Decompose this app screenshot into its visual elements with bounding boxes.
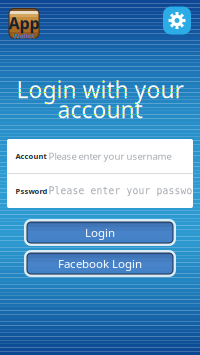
button[interactable]: App Wallet bbox=[8, 7, 40, 39]
staticText: Wallet bbox=[13, 31, 35, 41]
staticText: Login bbox=[85, 225, 115, 240]
staticText: App bbox=[8, 12, 39, 34]
staticText: Account bbox=[15, 151, 46, 161]
staticText: Facebook Login bbox=[58, 256, 142, 271]
staticText: Login with your bbox=[16, 74, 183, 104]
staticText: account bbox=[57, 94, 142, 125]
staticText: Please enter your username bbox=[48, 149, 171, 163]
button[interactable]: Settings bbox=[163, 6, 191, 34]
button[interactable]: Facebook Login bbox=[24, 250, 176, 277]
staticText: Pssword bbox=[15, 186, 47, 196]
button[interactable]: Login bbox=[24, 219, 176, 246]
staticText: Please enter your password bbox=[48, 185, 200, 197]
